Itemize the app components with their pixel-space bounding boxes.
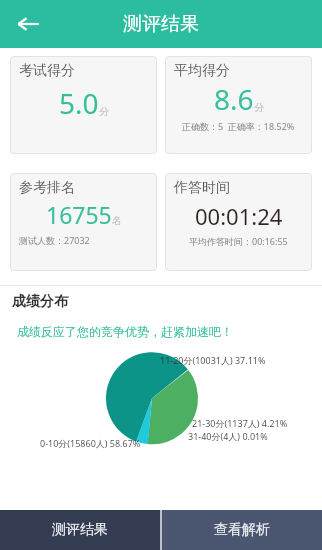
staticText: 正确数：5 正确率：18.52% <box>182 120 295 132</box>
staticText: 名 <box>112 214 122 227</box>
staticText: 查看解析 <box>214 521 270 539</box>
staticText: 5.0 <box>59 84 99 122</box>
button[interactable]: 平均得分 <box>165 56 312 154</box>
staticText: 参考排名 <box>19 179 75 197</box>
button[interactable]: 参考排名 <box>10 173 157 271</box>
button[interactable]: 测评结果 <box>0 510 160 550</box>
button[interactable]: 查看解析 <box>162 510 322 550</box>
staticText: 作答时间 <box>174 179 230 197</box>
staticText: 成绩反应了您的竞争优势，赶紧加速吧！ <box>17 324 233 339</box>
staticText: 11-20分(10031人) 37.11% <box>160 354 266 366</box>
staticText: 分 <box>254 101 264 114</box>
staticText: 测试人数：27032 <box>19 234 90 246</box>
staticText: 21-30分(1137人) 4.21% <box>192 417 288 429</box>
staticText: 31-40分(4人) 0.01% <box>188 430 268 442</box>
staticText: 成绩分布 <box>12 293 68 311</box>
staticText: 测评结果 <box>52 521 108 539</box>
staticText: 测评结果 <box>123 12 199 36</box>
staticText: 平均得分 <box>174 62 230 80</box>
button[interactable]: 考试得分 <box>10 56 157 154</box>
button[interactable]: Back <box>6 2 50 46</box>
staticText: 16755 <box>46 199 112 230</box>
staticText: 平均作答时间：00:16:55 <box>189 235 288 247</box>
staticText: 0-10分(15860人) 58.67% <box>40 437 141 449</box>
staticText: 8.6 <box>214 80 254 118</box>
staticText: 考试得分 <box>19 62 75 80</box>
staticText: 00:01:24 <box>195 201 283 231</box>
button[interactable]: 作答时间 <box>165 173 312 271</box>
staticText: 分 <box>99 105 109 118</box>
